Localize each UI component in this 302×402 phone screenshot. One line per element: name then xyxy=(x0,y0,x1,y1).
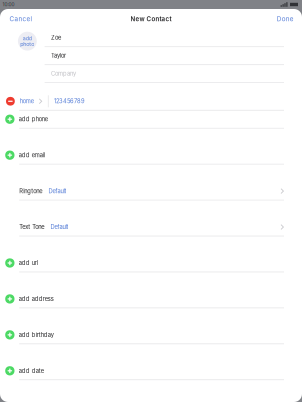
staticText: Zoe xyxy=(51,34,61,41)
staticText: Done xyxy=(277,15,294,23)
button[interactable]: add birthday xyxy=(0,326,302,344)
button[interactable]: Company xyxy=(45,65,284,83)
staticText: add birthday xyxy=(19,331,54,338)
button[interactable]: Add photo xyxy=(18,32,37,51)
button[interactable]: add url xyxy=(0,254,302,272)
staticText: 10:00 xyxy=(2,2,14,7)
staticText: Company xyxy=(51,70,76,77)
button[interactable]: Text Tone xyxy=(0,218,302,236)
button[interactable]: Zoe xyxy=(45,29,284,47)
button[interactable]: add email xyxy=(0,146,302,164)
staticText: Default xyxy=(48,188,66,194)
staticText: add xyxy=(23,35,32,41)
staticText: Ringtone xyxy=(19,188,42,194)
button[interactable]: Cancel xyxy=(9,15,32,23)
staticText: Text Tone xyxy=(19,224,44,230)
staticText: add date xyxy=(19,367,44,374)
button[interactable]: add address xyxy=(0,290,302,308)
staticText: add address xyxy=(19,295,54,302)
staticText: Taylor xyxy=(51,52,66,59)
staticText: add phone xyxy=(19,116,48,123)
button[interactable]: Done xyxy=(277,15,294,23)
button[interactable]: Taylor xyxy=(45,47,284,65)
staticText: Default xyxy=(50,224,68,230)
staticText: add url xyxy=(19,259,38,266)
staticText: 123456789 xyxy=(54,98,85,105)
staticText: New Contact xyxy=(130,15,171,23)
staticText: Cancel xyxy=(9,15,32,23)
button[interactable]: add date xyxy=(0,362,302,380)
button[interactable]: Ringtone xyxy=(0,182,302,200)
button[interactable]: add phone xyxy=(0,111,302,129)
staticText: photo xyxy=(20,41,34,47)
staticText: home xyxy=(20,98,34,105)
staticText: add email xyxy=(19,152,45,159)
button[interactable]: home xyxy=(0,93,302,111)
